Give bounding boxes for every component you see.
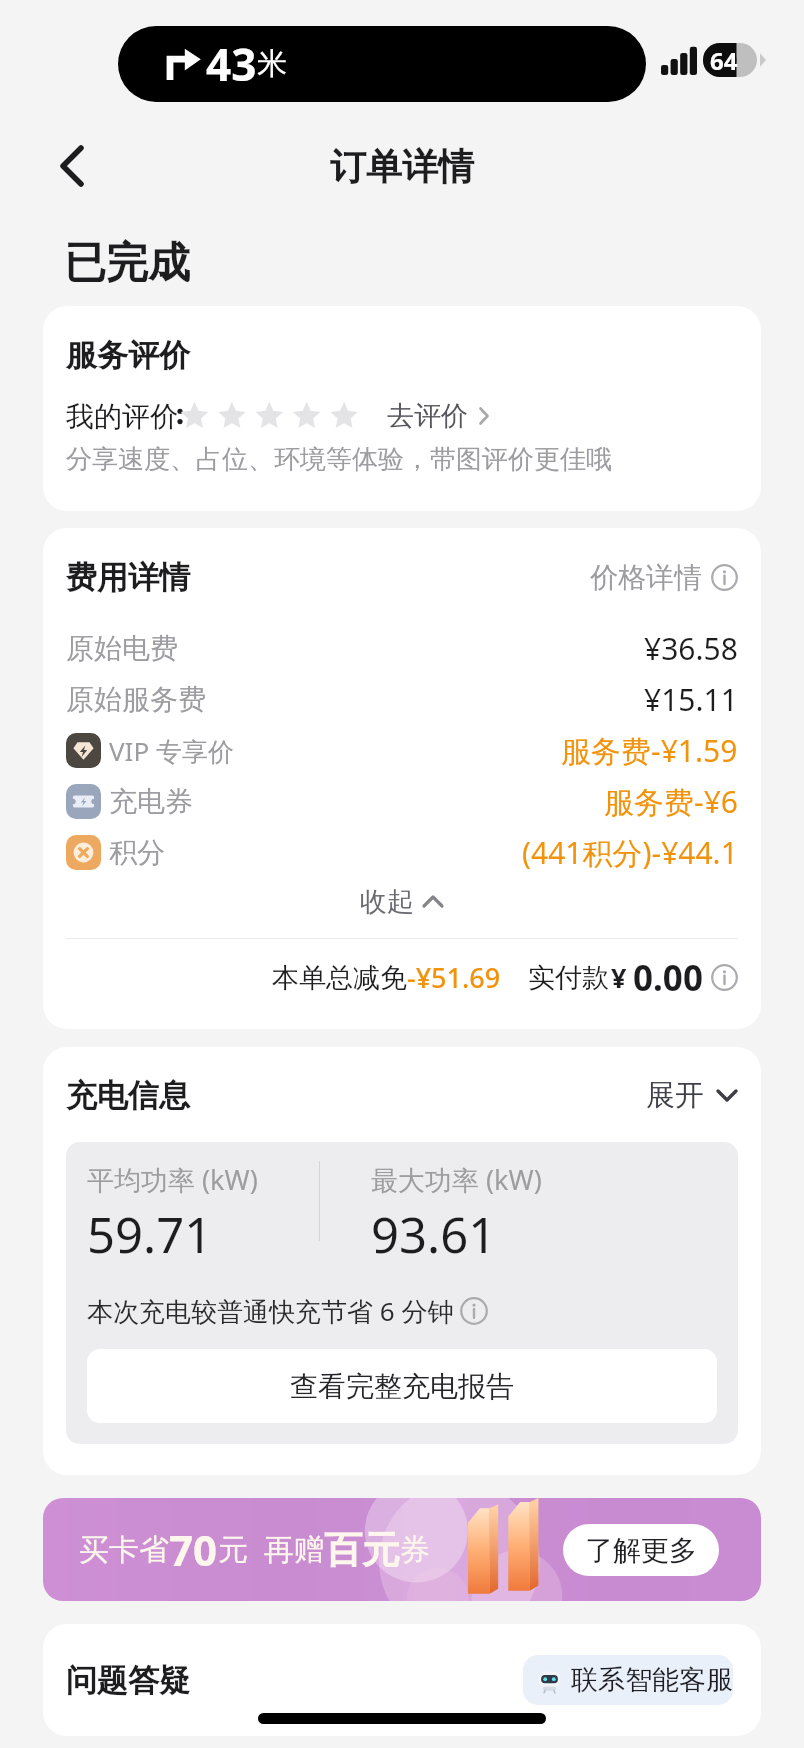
staticText: 实付款 [528,961,609,995]
staticText: 充电信息 [66,1076,190,1115]
staticText: 价格详情 [590,560,702,595]
staticText: ¥36.58 [644,628,738,669]
button[interactable]: 买卡省 [43,1498,761,1601]
staticText: 0.00 [633,954,703,1002]
staticText: 再赠 [264,1531,324,1569]
button[interactable]: 查看完整充电报告 [87,1349,717,1423]
staticText: 本单总减免 [272,961,407,995]
staticText: 93.61 [371,1201,497,1268]
staticText: 元 [218,1531,248,1569]
button[interactable]: 价格详情 [590,560,738,595]
staticText: 43 [206,34,257,94]
staticText: 分享速度、占位、环境等体验，带图评价更佳哦 [66,443,612,476]
staticText: VIP 专享价 [109,733,234,769]
staticText: 服务费-¥1.59 [561,730,738,771]
staticText: 充电券 [109,784,193,819]
button[interactable]: 去评价 [387,399,489,433]
staticText: 最大功率 (kW) [371,1161,542,1198]
staticText: -¥51.69 [407,959,501,996]
staticText: 问题答疑 [66,1661,190,1700]
staticText: 了解更多 [585,1533,697,1568]
staticText: 积分 [109,835,165,870]
staticText: 订单详情 [330,144,474,189]
staticText: 59.71 [87,1201,213,1268]
staticText: 去评价 [387,399,468,433]
staticText: 联系智能客服 [571,1663,733,1697]
staticText: 服务评价 [66,336,190,375]
staticText: 买卡省 [79,1531,169,1569]
staticText: 平均功率 (kW) [87,1161,258,1198]
staticText: ¥15.11 [644,679,738,720]
staticText: 原始电费 [66,631,178,666]
button[interactable]: 收起 [66,878,738,925]
staticText: 64 [710,44,738,77]
staticText: (441积分)-¥44.1 [522,832,738,873]
button[interactable]: Back [44,138,100,194]
staticText: 收起 [360,885,414,919]
staticText: 我的评价 [66,399,178,433]
staticText: 服务费-¥6 [604,781,738,822]
staticText: 70 [169,1521,218,1578]
staticText: 米 [257,45,287,83]
staticText: 展开 [646,1077,704,1114]
staticText: ¥ [611,959,627,996]
staticText: 券 [400,1531,430,1569]
staticText: 费用详情 [66,558,190,597]
staticText: 原始服务费 [66,682,206,717]
staticText: 本次充电较普通快充节省 6 分钟 [87,1293,454,1329]
button[interactable]: 联系智能客服 [523,1655,733,1705]
button[interactable]: 展开 [646,1077,738,1114]
staticText: 查看完整充电报告 [290,1369,514,1404]
staticText: 百元 [324,1526,400,1574]
staticText: 已完成 [64,237,190,290]
